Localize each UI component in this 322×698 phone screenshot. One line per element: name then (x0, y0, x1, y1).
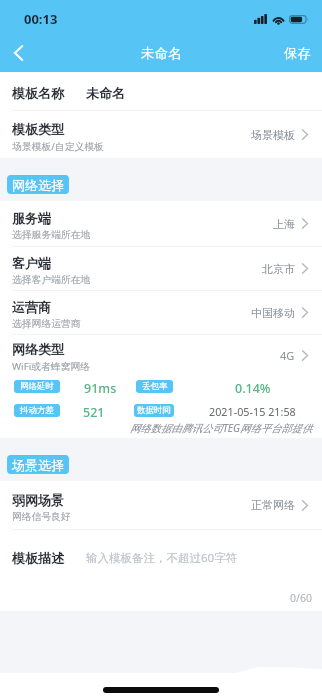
staticText: 网络延时 (20, 381, 54, 392)
button[interactable]: 保存 (273, 37, 322, 70)
staticText: 数据时间 (137, 405, 171, 416)
button[interactable]: 模板名称 (0, 72, 322, 110)
staticText: 模板描述 (12, 550, 64, 566)
staticText: 4G (280, 348, 295, 363)
staticText: 保存 (284, 45, 311, 62)
button[interactable]: 网络类型 (0, 335, 322, 375)
staticText: 北京市 (262, 262, 295, 276)
staticText: 选择网络运营商 (12, 318, 81, 330)
staticText: 输入模板备注，不超过60字符 (86, 550, 238, 566)
staticText: 抖动方差 (20, 405, 54, 416)
staticText: 服务端 (12, 210, 51, 226)
staticText: 上海 (273, 217, 295, 231)
staticText: 0.14% (235, 380, 271, 393)
staticText: 场景模板 (251, 128, 295, 142)
staticText: 91ms (84, 380, 117, 393)
button[interactable]: 客户端 (0, 247, 322, 290)
staticText: WiFi或者蜂窝网络 (12, 360, 91, 373)
button[interactable]: 网络选择 (7, 175, 69, 194)
staticText: 弱网场景 (12, 492, 64, 508)
staticText: 场景模板/自定义模板 (12, 140, 104, 153)
button[interactable]: Back (0, 35, 36, 71)
staticText: 未命名 (141, 45, 182, 62)
button[interactable]: 场景选择 (7, 455, 69, 474)
staticText: 00:13 (24, 10, 58, 28)
staticText: 正常网络 (251, 498, 295, 512)
staticText: 选择客户端所在地 (12, 274, 91, 286)
staticText: 网络类型 (12, 341, 64, 357)
staticText: 场景选择 (12, 457, 64, 473)
staticText: 中国移动 (251, 306, 295, 320)
staticText: 选择服务端所在地 (12, 229, 91, 241)
staticText: 521 (83, 404, 105, 417)
staticText: 丢包率 (142, 381, 168, 392)
staticText: 模板名称 (12, 85, 64, 101)
staticText: 0/60 (290, 591, 312, 605)
button[interactable]: 弱网场景 (0, 481, 322, 529)
button[interactable]: 运营商 (0, 291, 322, 334)
staticText: 客户端 (12, 255, 51, 271)
button[interactable]: 服务端 (0, 201, 322, 246)
staticText: 网络数据由腾讯公司TEG网络平台部提供 (130, 421, 313, 435)
staticText: 网络信号良好 (12, 511, 71, 523)
button[interactable]: 模板类型 (0, 111, 322, 158)
staticText: 2021-05-15 21:58 (209, 404, 296, 417)
button[interactable]: 模板描述 (0, 530, 322, 585)
staticText: 模板类型 (12, 121, 64, 137)
staticText: 未命名 (86, 85, 125, 101)
staticText: 网络选择 (12, 177, 64, 193)
staticText: 运营商 (12, 299, 51, 315)
